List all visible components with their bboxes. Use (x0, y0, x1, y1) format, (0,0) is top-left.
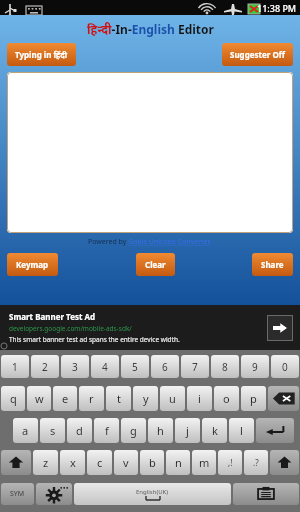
staticText: u (169, 391, 176, 406)
staticText: t (117, 391, 121, 406)
staticText: 4 (102, 360, 108, 374)
button[interactable]: x (60, 450, 85, 475)
staticText: d (76, 423, 83, 438)
button[interactable]: p (241, 386, 266, 411)
staticText: c (97, 455, 103, 470)
button[interactable]: q (1, 386, 25, 411)
button[interactable]: 9 (241, 355, 269, 378)
button[interactable]: t (106, 386, 131, 411)
button[interactable]: Shift (270, 450, 299, 475)
button[interactable]: a (13, 418, 38, 443)
button[interactable]: o (214, 386, 239, 411)
staticText: 11:38 PM (257, 2, 297, 14)
staticText: v (123, 455, 129, 470)
staticText: w (35, 391, 44, 406)
button[interactable]: Clear (136, 253, 175, 276)
staticText: r (89, 391, 94, 406)
staticText: 7 (192, 360, 198, 374)
button[interactable]: Share (252, 253, 293, 276)
button[interactable]: n (166, 450, 190, 475)
staticText: f (105, 423, 109, 438)
staticText: z (43, 455, 49, 470)
button[interactable]: b (140, 450, 164, 475)
button[interactable]: 0 (271, 355, 299, 378)
staticText: x (70, 455, 76, 470)
button[interactable]: Shift (1, 450, 31, 475)
button[interactable]: 7 (181, 355, 209, 378)
staticText: e (62, 391, 69, 406)
staticText: b (149, 455, 156, 470)
button[interactable]: 3 (61, 355, 89, 378)
button[interactable]: k (202, 418, 227, 443)
button[interactable]: 6 (151, 355, 179, 378)
staticText: s (50, 423, 56, 438)
staticText: ,! (228, 457, 233, 468)
staticText: Keymap (16, 259, 49, 270)
staticText: p (250, 391, 257, 406)
button[interactable]: 1 (1, 355, 29, 378)
staticText: This smart banner test ad spans the enti… (9, 335, 180, 344)
button[interactable]: Typing in हिंदी (7, 43, 76, 66)
staticText: हिन्दी-In-English Editor (87, 21, 214, 37)
staticText: 6 (162, 360, 168, 374)
button[interactable]: Clipboard (233, 483, 299, 505)
button[interactable]: 5 (121, 355, 149, 378)
button[interactable]: s (40, 418, 65, 443)
staticText: 8 (222, 360, 228, 374)
staticText: m (199, 455, 210, 470)
staticText: English(UK) (136, 488, 169, 496)
button[interactable]: English(UK) (74, 483, 231, 505)
button[interactable]: e (53, 386, 77, 411)
button[interactable]: Smart Banner Test Ad (0, 305, 300, 350)
button[interactable]: ,! (218, 450, 242, 475)
button[interactable]: f (94, 418, 119, 443)
button[interactable]: Keymap (7, 253, 58, 276)
staticText: 2 (42, 360, 48, 374)
staticText: y (143, 391, 149, 406)
button[interactable]: c (87, 450, 112, 475)
staticText: 9 (252, 360, 258, 374)
button[interactable]: m (192, 450, 216, 475)
button[interactable]: l (229, 418, 254, 443)
button[interactable]: SYM (1, 483, 34, 505)
button[interactable]: Settings (36, 483, 72, 505)
staticText: 1 (12, 360, 18, 374)
staticText: Smart Banner Test Ad (9, 311, 96, 322)
button[interactable]: y (133, 386, 158, 411)
button[interactable]: h (148, 418, 173, 443)
button[interactable]: Enter (256, 418, 294, 443)
button[interactable]: Open ad (267, 315, 293, 341)
staticText: h (157, 423, 164, 438)
staticText: Suggester Off (230, 49, 285, 60)
button[interactable]: u (160, 386, 185, 411)
button[interactable] (7, 72, 293, 233)
button[interactable]: Backspace (268, 386, 299, 411)
button[interactable]: r (79, 386, 104, 411)
staticText: i (198, 391, 201, 406)
button[interactable]: 4 (91, 355, 119, 378)
staticText: o (223, 391, 230, 406)
staticText: n (175, 455, 182, 470)
button[interactable]: j (175, 418, 200, 443)
button[interactable]: 8 (211, 355, 239, 378)
staticText: Clear (145, 259, 166, 270)
button[interactable]: g (121, 418, 146, 443)
button[interactable]: i (187, 386, 212, 411)
staticText: 3 (72, 360, 78, 374)
button[interactable]: d (67, 418, 92, 443)
staticText: k (212, 423, 218, 438)
staticText: j (186, 423, 189, 438)
button[interactable]: z (33, 450, 58, 475)
button[interactable]: Suggester Off (222, 43, 293, 66)
button[interactable]: .? (244, 450, 268, 475)
staticText: q (10, 391, 17, 406)
staticText: l (240, 423, 243, 438)
button[interactable]: v (114, 450, 138, 475)
staticText: g (130, 423, 137, 438)
button[interactable]: w (27, 386, 51, 411)
staticText: a (22, 423, 29, 438)
staticText: SYM (10, 489, 25, 499)
button[interactable]: 2 (31, 355, 59, 378)
staticText: Share (261, 259, 284, 270)
staticText: Typing in हिंदी (15, 49, 68, 60)
